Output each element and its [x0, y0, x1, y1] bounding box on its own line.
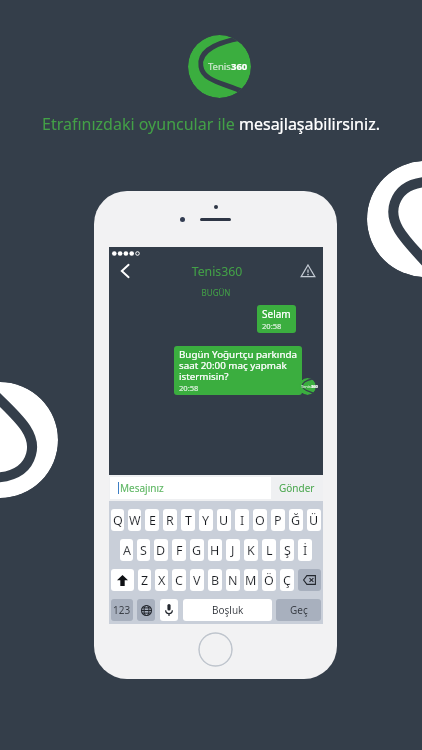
button[interactable]: M — [244, 569, 258, 591]
staticText: Ğ — [291, 512, 301, 529]
button[interactable]: C — [172, 569, 186, 591]
button[interactable]: Shift — [111, 569, 134, 591]
button[interactable]: Report user — [298, 261, 318, 281]
button[interactable]: Change language — [137, 599, 155, 621]
button[interactable]: Back — [115, 261, 135, 281]
button[interactable]: T — [181, 509, 195, 531]
button[interactable]: L — [262, 539, 276, 561]
button[interactable]: I — [235, 509, 249, 531]
button[interactable]: Geç — [276, 599, 321, 621]
button[interactable]: Boşluk — [183, 599, 272, 621]
button[interactable]: Y — [199, 509, 213, 531]
button[interactable]: F — [172, 539, 186, 561]
button[interactable]: J — [226, 539, 240, 561]
button[interactable]: Ü — [307, 509, 321, 531]
button[interactable]: Voice input — [160, 599, 178, 621]
button[interactable]: Z — [138, 569, 151, 591]
staticText: U — [219, 512, 229, 529]
button[interactable]: P — [271, 509, 285, 531]
button[interactable]: W — [128, 509, 141, 531]
button[interactable]: Ö — [262, 569, 276, 591]
staticText: Gönder — [279, 481, 315, 495]
button[interactable]: Bugün Yoğurtçu parkında saat 20:00 maç y… — [174, 346, 302, 395]
button[interactable]: Q — [111, 509, 124, 531]
button[interactable]: Selam — [257, 305, 296, 333]
staticText: İ — [303, 542, 308, 559]
staticText: I — [240, 512, 245, 529]
button[interactable]: Ğ — [289, 509, 303, 531]
staticText: Selam — [262, 307, 291, 321]
staticText: Tenis360 — [110, 263, 324, 280]
staticText: F — [176, 542, 183, 559]
staticText: A — [123, 542, 131, 559]
button[interactable]: E — [145, 509, 159, 531]
staticText: S — [140, 542, 147, 559]
staticText: H — [210, 542, 220, 559]
staticText: B — [211, 572, 220, 589]
staticText: D — [156, 542, 166, 559]
staticText: K — [247, 542, 255, 559]
button[interactable]: A — [120, 539, 133, 561]
button[interactable]: N — [226, 569, 240, 591]
staticText: W — [129, 512, 141, 529]
staticText: Z — [141, 572, 149, 589]
staticText: T — [185, 512, 192, 529]
staticText: Etrafınızdaki oyuncular ile — [42, 113, 239, 135]
staticText: Bugün Yoğurtçu parkında saat 20:00 maç y… — [179, 348, 297, 383]
staticText: Ş — [284, 542, 291, 559]
staticText: L — [266, 542, 273, 559]
staticText: X — [158, 572, 166, 589]
button[interactable]: Ş — [280, 539, 294, 561]
button[interactable]: Numbers — [111, 599, 133, 621]
staticText: 360 — [231, 60, 248, 73]
staticText: G — [192, 542, 202, 559]
staticText: Boşluk — [212, 603, 244, 617]
staticText: E — [149, 512, 156, 529]
staticText: 123 — [113, 603, 131, 617]
button[interactable]: Home — [198, 632, 233, 667]
staticText: Y — [202, 512, 210, 529]
staticText: mesajlaşabilirsiniz. — [239, 113, 380, 135]
staticText: C — [175, 572, 183, 589]
button[interactable]: Gönder — [279, 475, 337, 501]
button[interactable]: G — [190, 539, 204, 561]
button[interactable]: U — [217, 509, 231, 531]
staticText: V — [193, 572, 201, 589]
button[interactable]: S — [137, 539, 150, 561]
staticText: M — [245, 572, 257, 589]
staticText: N — [228, 572, 238, 589]
button[interactable]: K — [244, 539, 258, 561]
button[interactable]: X — [155, 569, 168, 591]
staticText: Tenis — [301, 384, 311, 389]
button[interactable]: Mesajınız — [110, 477, 271, 499]
staticText: P — [274, 512, 282, 529]
staticText: 360 — [311, 384, 318, 389]
staticText: 20:58 — [262, 321, 282, 331]
staticText: Tenis — [208, 60, 231, 73]
button[interactable]: B — [208, 569, 222, 591]
staticText: Q — [113, 512, 123, 529]
button[interactable]: Backspace — [298, 569, 321, 591]
button[interactable]: Ç — [280, 569, 294, 591]
staticText: R — [166, 512, 174, 529]
staticText: Ç — [283, 572, 291, 589]
button[interactable]: V — [190, 569, 204, 591]
staticText: Ü — [309, 512, 319, 529]
button[interactable]: İ — [298, 539, 312, 561]
staticText: BUGÜN — [109, 287, 323, 298]
staticText: J — [231, 542, 235, 559]
button[interactable]: R — [163, 509, 177, 531]
button[interactable]: O — [253, 509, 267, 531]
staticText: 20:58 — [179, 383, 199, 393]
staticText: Geç — [290, 603, 308, 617]
button[interactable]: D — [154, 539, 168, 561]
button[interactable]: H — [208, 539, 222, 561]
staticText: Ö — [264, 572, 274, 589]
staticText: Mesajınız — [120, 481, 164, 495]
staticText: O — [255, 512, 265, 529]
